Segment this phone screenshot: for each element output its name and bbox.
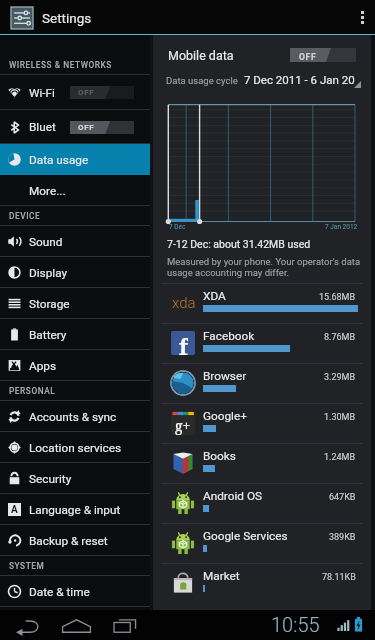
staticText: WIRELESS & NETWORKS bbox=[9, 60, 112, 70]
staticText: 1.24MB bbox=[324, 452, 356, 463]
staticText: Google Services bbox=[203, 529, 288, 543]
button[interactable]: Bluet bbox=[0, 110, 150, 144]
button[interactable]: g+ bbox=[153, 403, 371, 443]
staticText: Date & time bbox=[29, 585, 90, 599]
button[interactable]: Recent apps bbox=[110, 610, 140, 640]
staticText: 7 Dec 2011 - 6 Jan 20 bbox=[244, 73, 355, 86]
button[interactable]: Date & time bbox=[0, 576, 150, 607]
staticText: 7-12 Dec: about 31.42MB used bbox=[167, 238, 311, 250]
button[interactable]: Location services bbox=[0, 432, 150, 463]
button[interactable]: Market bbox=[153, 563, 371, 603]
staticText: Settings bbox=[42, 10, 92, 26]
button[interactable]: Sound bbox=[0, 226, 150, 257]
staticText: Google+ bbox=[203, 409, 247, 423]
staticText: 78.11KB bbox=[322, 572, 356, 583]
staticText: 7 Jan 2012 bbox=[325, 223, 358, 231]
staticText: OFF bbox=[78, 88, 95, 97]
staticText: 8.76MB bbox=[324, 332, 356, 343]
staticText: OFF bbox=[78, 123, 95, 132]
staticText: Sound bbox=[29, 235, 63, 249]
staticText: PERSONAL bbox=[9, 386, 56, 396]
staticText: Battery bbox=[29, 328, 67, 342]
staticText: f bbox=[179, 331, 188, 355]
staticText: 1.30MB bbox=[324, 412, 356, 423]
button[interactable]: xda bbox=[153, 283, 371, 323]
staticText: Data usage bbox=[29, 153, 89, 167]
button[interactable]: Google Services bbox=[153, 523, 371, 563]
button[interactable]: Display bbox=[0, 257, 150, 288]
staticText: 389KB bbox=[329, 532, 356, 543]
button[interactable]: Apps bbox=[0, 350, 150, 381]
button[interactable]: Backup & reset bbox=[0, 525, 150, 556]
button[interactable]: Wi-Fi switch bbox=[70, 86, 134, 99]
staticText: 7 Dec bbox=[169, 223, 186, 231]
staticText: 15.68MB bbox=[319, 292, 356, 303]
button[interactable]: Android OS bbox=[153, 483, 371, 523]
staticText: Books bbox=[203, 449, 236, 463]
staticText: Android OS bbox=[203, 489, 263, 503]
staticText: Location services bbox=[29, 441, 122, 455]
button[interactable]: Accounts & sync bbox=[0, 401, 150, 432]
button[interactable]: Home bbox=[61, 610, 91, 640]
staticText: Storage bbox=[29, 297, 70, 311]
staticText: DEVICE bbox=[9, 211, 41, 221]
staticText: OFF bbox=[299, 52, 317, 62]
staticText: More... bbox=[29, 184, 66, 198]
button[interactable]: A bbox=[0, 494, 150, 525]
button[interactable]: Browser bbox=[153, 363, 371, 403]
staticText: A bbox=[11, 504, 18, 516]
staticText: g+ bbox=[175, 416, 191, 435]
staticText: 647KB bbox=[329, 492, 356, 503]
staticText: Measured by your phone. Your operator's … bbox=[167, 256, 361, 278]
staticText: Mobile data bbox=[168, 48, 234, 63]
staticText: Security bbox=[29, 472, 72, 486]
button[interactable]: More options bbox=[349, 0, 375, 35]
button[interactable]: More... bbox=[0, 175, 150, 206]
button[interactable]: Back bbox=[12, 610, 42, 640]
staticText: Facebook bbox=[203, 329, 255, 343]
button[interactable]: Mobile data switch bbox=[290, 48, 356, 62]
staticText: XDA bbox=[203, 289, 226, 303]
staticText: Backup & reset bbox=[29, 534, 108, 548]
button[interactable]: f bbox=[153, 323, 371, 363]
staticText: SYSTEM bbox=[9, 561, 45, 571]
button[interactable]: Books bbox=[153, 443, 371, 483]
button[interactable]: Bluet switch bbox=[70, 121, 134, 134]
button[interactable]: 7 Dec 2011 - 6 Jan 20 bbox=[239, 68, 361, 92]
staticText: Browser bbox=[203, 369, 247, 383]
staticText: Language & input bbox=[29, 503, 121, 517]
button[interactable]: Wi-Fi bbox=[0, 75, 150, 110]
staticText: Apps bbox=[29, 359, 57, 373]
button[interactable]: Battery bbox=[0, 319, 150, 350]
staticText: Accounts & sync bbox=[29, 410, 117, 424]
staticText: Market bbox=[203, 569, 240, 583]
staticText: Bluet bbox=[29, 120, 56, 134]
staticText: 3.29MB bbox=[324, 372, 356, 383]
staticText: 10:55 bbox=[271, 613, 320, 636]
staticText: Display bbox=[29, 266, 68, 280]
staticText: Wi-Fi bbox=[29, 86, 55, 100]
button[interactable]: Security bbox=[0, 463, 150, 494]
staticText: xda bbox=[172, 294, 196, 312]
button[interactable]: Data usage bbox=[0, 144, 150, 175]
button[interactable]: Storage bbox=[0, 288, 150, 319]
staticText: Data usage cycle bbox=[166, 75, 238, 86]
